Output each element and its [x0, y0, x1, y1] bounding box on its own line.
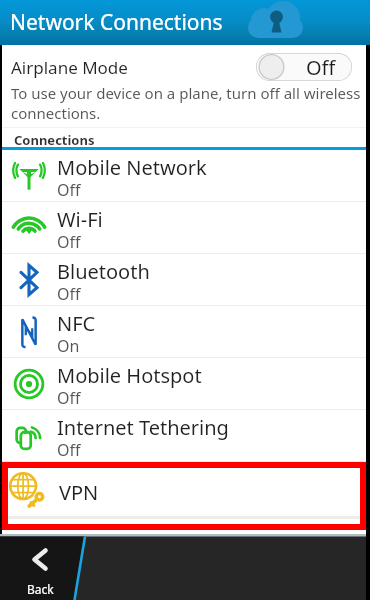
staticText: To use your device on a plane, turn off … [11, 83, 362, 123]
staticText: Off [57, 439, 81, 461]
staticText: Mobile Network [57, 154, 207, 181]
staticText: Back [27, 581, 54, 597]
button[interactable]: Back [0, 534, 80, 600]
staticText: Bluetooth [57, 258, 150, 285]
button[interactable]: Internet Tethering [2, 410, 366, 461]
staticText: Off [57, 387, 81, 409]
staticText: Off [57, 283, 81, 305]
button[interactable]: Wi-Fi [2, 202, 366, 253]
staticText: On [57, 335, 80, 357]
button[interactable]: Airplane Mode [2, 48, 366, 86]
staticText: VPN [59, 479, 99, 506]
staticText: Internet Tethering [57, 414, 229, 441]
staticText: Off [57, 179, 81, 201]
button[interactable]: Off [256, 53, 352, 81]
staticText: Off [57, 231, 81, 253]
staticText: Wi-Fi [57, 206, 103, 233]
staticText: Mobile Hotspot [57, 362, 202, 389]
button[interactable]: NFC [2, 306, 366, 357]
staticText: NFC [57, 310, 96, 337]
staticText: Network Connections [10, 8, 223, 37]
staticText: Off [306, 54, 336, 81]
staticText: Connections [14, 131, 95, 149]
button[interactable]: Bluetooth [2, 254, 366, 305]
other: Back [33, 549, 47, 570]
staticText: Airplane Mode [11, 56, 128, 79]
button[interactable]: VPN [8, 468, 360, 516]
button[interactable]: Mobile Network [2, 150, 366, 201]
button[interactable]: Mobile Hotspot [2, 358, 366, 409]
